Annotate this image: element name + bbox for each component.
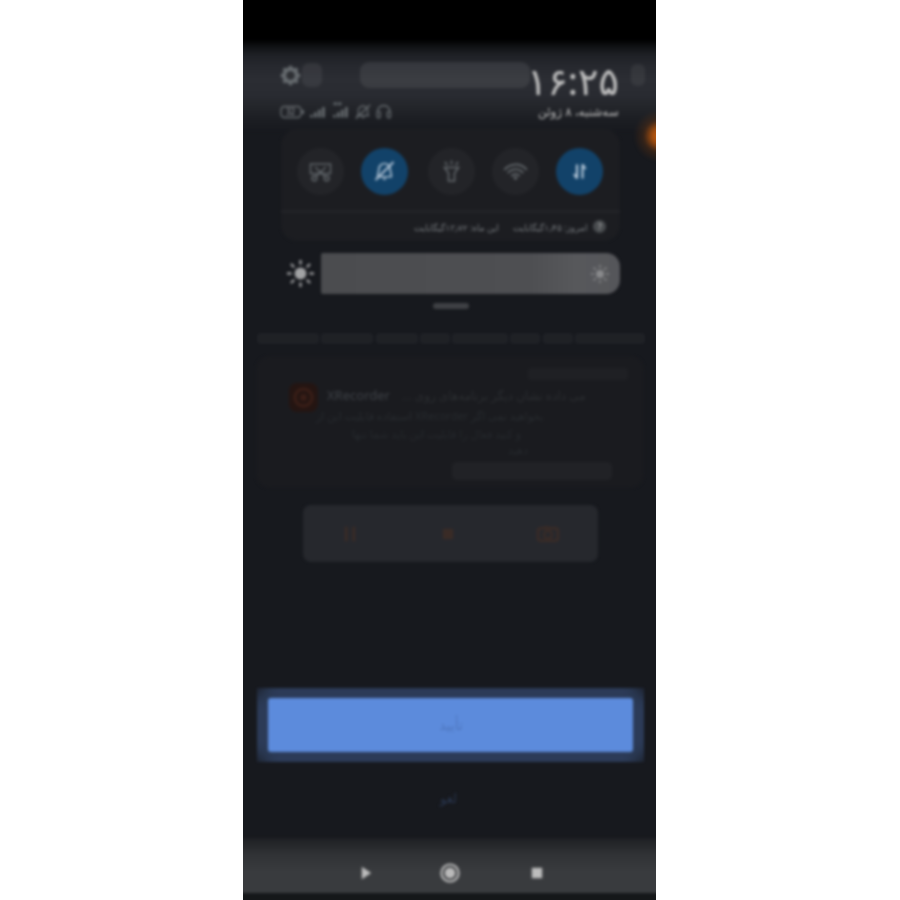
button[interactable]: Screenshot bbox=[535, 521, 561, 547]
button[interactable]: Pause bbox=[337, 521, 363, 547]
button[interactable]: Brightness bbox=[321, 253, 620, 294]
button[interactable]: Recents bbox=[524, 860, 550, 886]
button[interactable]: Silent mode bbox=[361, 148, 408, 195]
staticText: ? bbox=[598, 221, 602, 232]
button[interactable]: Back bbox=[353, 860, 379, 886]
button[interactable]: Wi-Fi bbox=[492, 148, 539, 195]
button[interactable]: Screenshot bbox=[297, 148, 344, 195]
button[interactable]: Stop bbox=[435, 521, 461, 547]
staticText: سه‌شنبه، ۸ ژوئن bbox=[538, 103, 619, 119]
staticText: تأیید bbox=[439, 717, 463, 733]
button[interactable]: Settings bbox=[280, 65, 301, 86]
staticText: 32 bbox=[286, 106, 296, 117]
button[interactable]: Flashlight bbox=[428, 148, 475, 195]
button[interactable]: تأیید bbox=[268, 698, 633, 752]
staticText: امروز: ۱٫۴۵گیگابایت bbox=[513, 221, 588, 233]
staticText: این ماه: ۱۳٫۷۲گیگابایت bbox=[414, 221, 499, 233]
button[interactable]: Mobile data bbox=[556, 148, 603, 195]
staticText: XRecorder bbox=[327, 386, 390, 404]
button[interactable]: لغو bbox=[408, 786, 488, 810]
staticText: ۱۶:۲۵ bbox=[527, 54, 619, 98]
button[interactable]: Home bbox=[437, 860, 463, 886]
staticText: لغو bbox=[440, 791, 457, 806]
